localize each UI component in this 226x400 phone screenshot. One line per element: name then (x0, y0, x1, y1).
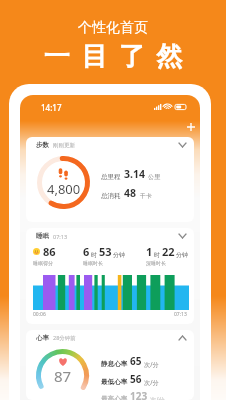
staticText: 53 (99, 244, 112, 259)
staticText: 87 (54, 366, 72, 386)
staticText: 次/分 (144, 378, 159, 386)
button[interactable]: Expand (177, 231, 187, 241)
button[interactable]: 步数 (26, 137, 194, 222)
staticText: 07:13 (53, 233, 68, 240)
staticText: 步数 (36, 141, 49, 149)
staticText: 时 (91, 251, 97, 259)
staticText: 时 (154, 251, 160, 259)
button[interactable]: 睡眠 (26, 228, 194, 324)
staticText: 00:06 (33, 311, 46, 318)
staticText: 总消耗 (101, 192, 121, 200)
staticText: 睡眠 (36, 232, 49, 240)
staticText: 最低心率 (101, 378, 128, 386)
button[interactable]: 心率 (26, 330, 194, 400)
staticText: 最高心率 (101, 395, 128, 400)
staticText: 深睡时长 (146, 260, 166, 266)
staticText: 分钟 (113, 251, 125, 259)
button[interactable]: Expand (177, 333, 187, 343)
staticText: 123 (130, 389, 148, 400)
staticText: 86 (43, 244, 56, 259)
staticText: 22 (162, 244, 175, 259)
staticText: 次/分 (150, 395, 165, 400)
staticText: 睡眠得分 (33, 260, 53, 266)
staticText: 6 (83, 244, 90, 259)
staticText: 次/分 (144, 360, 159, 368)
button[interactable]: Add (183, 119, 199, 135)
staticText: 1 (146, 244, 153, 259)
staticText: 48 (124, 186, 137, 200)
staticText: 千卡 (140, 192, 152, 200)
staticText: 56 (130, 372, 142, 386)
staticText: 个性化首页 (78, 19, 148, 37)
button[interactable]: Expand (177, 140, 187, 150)
staticText: 公里 (148, 173, 160, 181)
staticText: 65 (130, 354, 142, 368)
staticText: 14:17 (41, 102, 62, 113)
staticText: 分钟 (176, 251, 188, 259)
staticText: 3.14 (124, 167, 145, 181)
staticText: 静息心率 (101, 360, 128, 368)
staticText: 28分钟前 (53, 334, 76, 342)
staticText: 一目了然 (38, 40, 188, 73)
staticText: 心率 (36, 334, 49, 342)
staticText: 睡眠时长 (83, 260, 103, 266)
staticText: 刚刚更新 (53, 142, 75, 149)
staticText: 07:13 (174, 311, 187, 318)
staticText: 总里程 (101, 173, 121, 181)
staticText: 4,800 (47, 180, 81, 198)
